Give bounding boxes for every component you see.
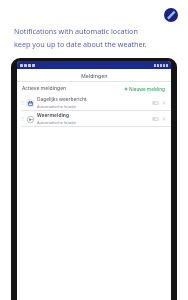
staticText: Automatische locatie xyxy=(37,104,77,109)
staticText: Automatische locatie xyxy=(37,120,77,125)
button[interactable]: Toggle notification xyxy=(152,101,159,105)
button[interactable]: Dagelijks weerbericht xyxy=(17,95,171,110)
staticText: Meldingen xyxy=(81,72,108,79)
button[interactable]: Open details xyxy=(161,100,167,106)
button[interactable]: Nieuwe melding xyxy=(123,85,166,93)
staticText: Nieuwe melding xyxy=(129,86,165,92)
staticText: Weermelding xyxy=(37,112,70,119)
staticText: keep you up to date about the weather. xyxy=(14,39,147,49)
button[interactable]: Toggle notification xyxy=(152,117,159,121)
staticText: Dagelijks weerbericht xyxy=(37,96,87,103)
staticText: Notifications with automatic location xyxy=(14,26,138,36)
staticText: Actieve meldingen xyxy=(22,85,67,92)
button[interactable]: Open details xyxy=(161,116,167,122)
button[interactable]: Weermelding xyxy=(17,111,171,126)
